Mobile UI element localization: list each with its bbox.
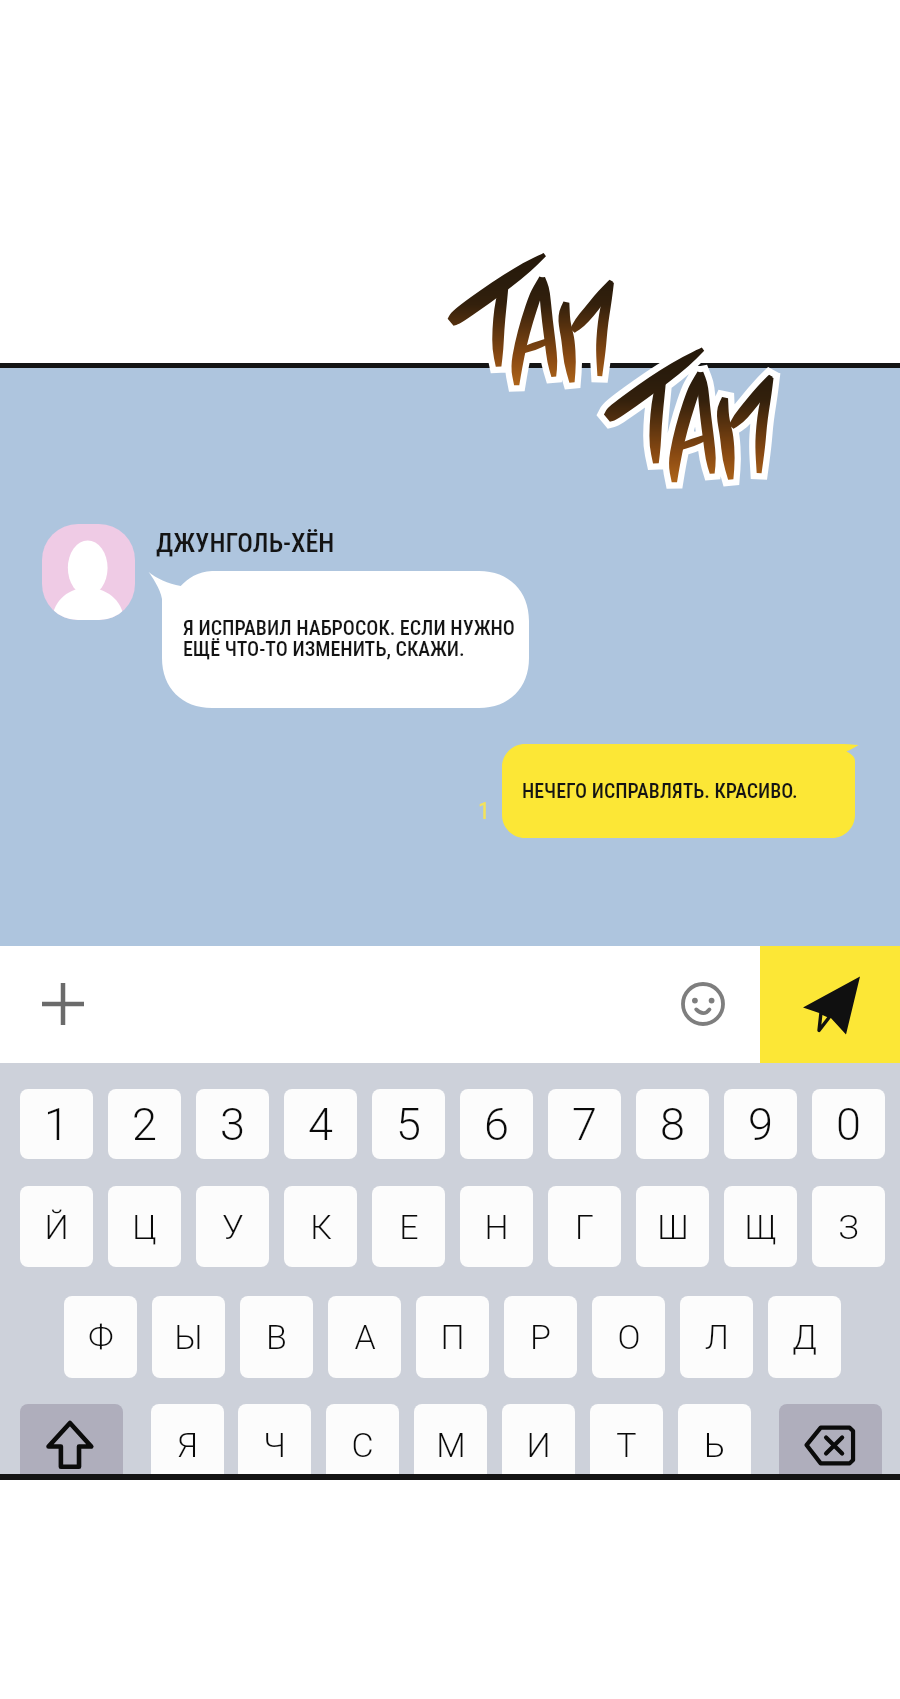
staticText: НЕЧЕГО ИСПРАВЛЯТЬ. КРАСИВО. [522, 780, 798, 803]
button[interactable]: Л [680, 1296, 753, 1378]
staticText: Ч [263, 1425, 286, 1465]
button[interactable]: Й [20, 1186, 93, 1267]
button[interactable]: Щ [724, 1186, 797, 1267]
button[interactable]: Д [768, 1296, 841, 1378]
button[interactable]: А [328, 1296, 401, 1378]
button[interactable]: Ц [108, 1186, 181, 1267]
staticText: Л [705, 1317, 729, 1357]
button[interactable]: Ь [678, 1404, 751, 1474]
staticText: Щ [744, 1207, 777, 1247]
staticText: Ф [88, 1317, 114, 1357]
button[interactable]: Add attachment [38, 979, 88, 1029]
button[interactable]: Backspace [779, 1404, 882, 1474]
staticText: М [436, 1425, 466, 1465]
staticText: Ш [657, 1207, 689, 1247]
button[interactable]: У [196, 1186, 269, 1267]
button[interactable]: Ф [64, 1296, 137, 1378]
button[interactable]: Е [372, 1186, 445, 1267]
button[interactable]: 7 [548, 1089, 621, 1159]
button[interactable]: К [284, 1186, 357, 1267]
button[interactable]: 5 [372, 1089, 445, 1159]
staticText: Н [484, 1207, 509, 1247]
button[interactable]: 9 [724, 1089, 797, 1159]
staticText: Й [44, 1207, 69, 1247]
staticText: Я ИСПРАВИЛ НАБРОСОК. ЕСЛИ НУЖНО ЕЩЁ ЧТО-… [183, 616, 515, 660]
button[interactable]: П [416, 1296, 489, 1378]
staticText: Д [792, 1317, 817, 1357]
button[interactable]: Add attachment [0, 946, 760, 1063]
staticText: З [838, 1207, 859, 1247]
staticText: С [351, 1425, 374, 1465]
button[interactable]: Т [590, 1404, 663, 1474]
button[interactable]: 2 [108, 1089, 181, 1159]
staticText: Т [616, 1425, 637, 1465]
button[interactable]: Shift [20, 1404, 123, 1474]
staticText: А [354, 1317, 376, 1357]
button[interactable]: 3 [196, 1089, 269, 1159]
staticText: Г [575, 1207, 594, 1247]
staticText: 3 [220, 1098, 245, 1151]
button[interactable]: М [414, 1404, 487, 1474]
button[interactable]: Profile picture [42, 524, 135, 620]
button[interactable]: Send [760, 946, 900, 1063]
staticText: 5 [396, 1098, 421, 1151]
staticText: Е [399, 1207, 419, 1247]
button[interactable]: Emoji [681, 982, 725, 1026]
staticText: 1 [478, 797, 490, 825]
staticText: Ь [704, 1425, 725, 1465]
staticText: 8 [660, 1098, 685, 1151]
staticText: 2 [132, 1098, 157, 1151]
staticText: ДЖУНГОЛЬ-ХЁН [156, 528, 335, 558]
staticText: О [617, 1317, 641, 1357]
button[interactable]: О [592, 1296, 665, 1378]
staticText: П [440, 1317, 465, 1357]
button[interactable]: Ы [152, 1296, 225, 1378]
button[interactable]: В [240, 1296, 313, 1378]
button[interactable]: Я [151, 1404, 224, 1474]
staticText: В [266, 1317, 287, 1357]
staticText: 7 [572, 1098, 597, 1151]
button[interactable]: 4 [284, 1089, 357, 1159]
button[interactable]: Ш [636, 1186, 709, 1267]
button[interactable]: З [812, 1186, 885, 1267]
staticText: И [526, 1425, 551, 1465]
staticText: 6 [484, 1098, 509, 1151]
staticText: Ы [174, 1317, 203, 1357]
button[interactable]: Н [460, 1186, 533, 1267]
staticText: 1 [44, 1098, 69, 1151]
staticText: Р [530, 1317, 551, 1357]
button[interactable]: 1 [20, 1089, 93, 1159]
staticText: Я [177, 1425, 198, 1465]
staticText: Ц [132, 1207, 157, 1247]
button[interactable]: 8 [636, 1089, 709, 1159]
staticText: 0 [836, 1098, 861, 1151]
staticText: 4 [308, 1098, 333, 1151]
button[interactable]: Г [548, 1186, 621, 1267]
staticText: У [222, 1207, 244, 1247]
button[interactable]: И [502, 1404, 575, 1474]
button[interactable]: С [326, 1404, 399, 1474]
button[interactable]: Ч [238, 1404, 311, 1474]
staticText: К [310, 1207, 332, 1247]
button[interactable]: Р [504, 1296, 577, 1378]
button[interactable]: 0 [812, 1089, 885, 1159]
button[interactable]: 6 [460, 1089, 533, 1159]
staticText: 9 [748, 1098, 773, 1151]
